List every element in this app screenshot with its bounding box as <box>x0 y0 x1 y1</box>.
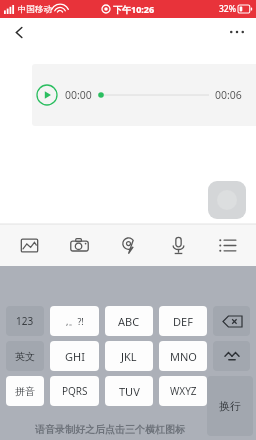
staticText: 语音录制好之后点击三个横杠图标 <box>35 423 185 436</box>
button[interactable]: 拼音 <box>6 376 44 406</box>
staticText: ABC <box>118 314 140 329</box>
button[interactable]: Camera <box>64 230 94 260</box>
staticText: 英文 <box>15 350 35 363</box>
staticText: 00:00 <box>65 88 92 102</box>
button[interactable]: Delete <box>213 306 250 336</box>
staticText: PQRS <box>62 384 88 398</box>
staticText: GHI <box>65 349 85 364</box>
staticText: 00:06 <box>215 88 242 102</box>
button[interactable]: Play <box>36 84 58 106</box>
staticText: 拼音 <box>15 385 35 398</box>
button[interactable]: Photos <box>14 230 44 260</box>
staticText: WXYZ <box>170 384 197 398</box>
staticText: 32% <box>219 3 236 15</box>
button[interactable]: TUV <box>105 376 153 406</box>
staticText: JKL <box>121 349 137 364</box>
button[interactable]: JKL <box>105 341 153 371</box>
button[interactable]: ABC <box>105 306 153 336</box>
staticText: DEF <box>173 314 193 329</box>
button[interactable]: WXYZ <box>159 376 207 406</box>
button[interactable]: Shift <box>213 341 250 371</box>
button[interactable]: Play <box>32 64 256 126</box>
staticText: TUV <box>119 384 140 399</box>
button[interactable]: More options <box>224 19 250 45</box>
staticText: 换行 <box>219 399 241 413</box>
button[interactable]: 英文 <box>6 341 44 371</box>
staticText: ,。?! <box>66 315 84 327</box>
button[interactable]: 123 <box>6 306 44 336</box>
staticText: MNO <box>170 349 197 364</box>
button[interactable]: Voice <box>163 230 193 260</box>
button[interactable]: PQRS <box>50 376 99 406</box>
button[interactable]: MNO <box>159 341 207 371</box>
button[interactable]: GHI <box>50 341 99 371</box>
button[interactable]: List <box>212 230 242 260</box>
button[interactable]: 换行 <box>207 376 253 436</box>
button[interactable]: Back <box>6 19 32 45</box>
button[interactable]: DEF <box>159 306 207 336</box>
button[interactable]: Location <box>113 230 143 260</box>
staticText: 中国移动 <box>18 4 52 15</box>
button[interactable]: ,。?! <box>50 306 99 336</box>
staticText: 123 <box>16 314 34 328</box>
button[interactable]: Avatar <box>208 181 246 219</box>
staticText: 下午10:26 <box>113 3 155 15</box>
